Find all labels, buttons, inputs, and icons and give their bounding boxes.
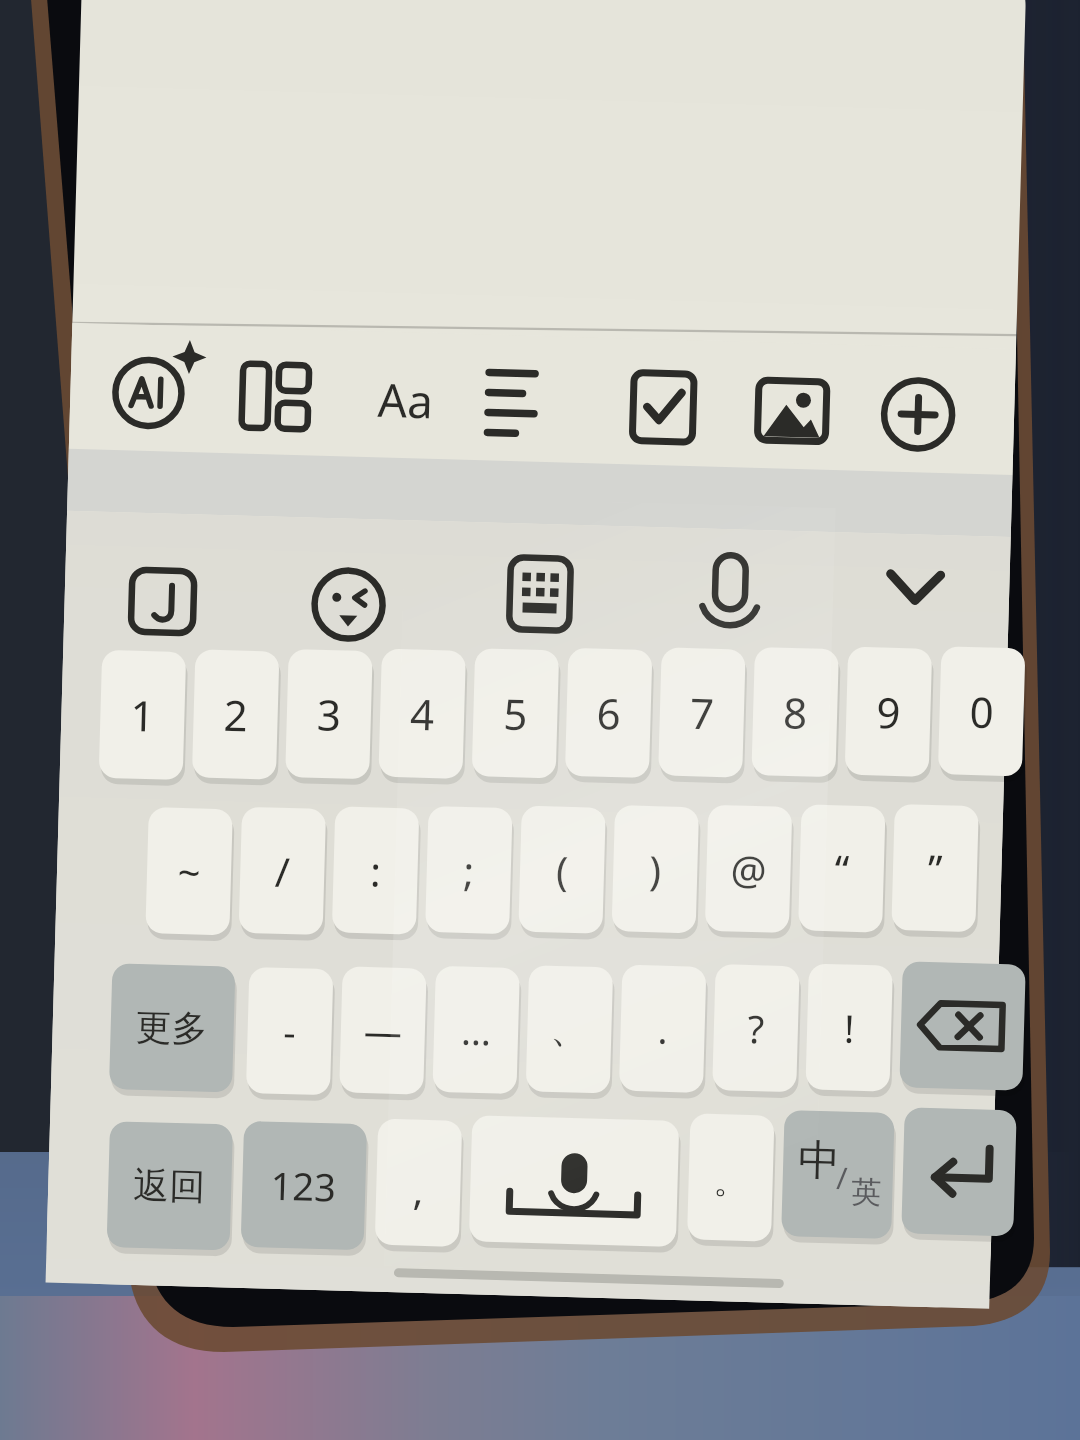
button[interactable]: @ [711, 800, 795, 926]
button[interactable]: Text format [345, 352, 449, 456]
button[interactable]: … [443, 969, 527, 1095]
button[interactable]: ! [816, 956, 900, 1082]
button[interactable]: - [257, 975, 341, 1101]
button[interactable]: 8 [753, 641, 837, 769]
button[interactable]: 4 [380, 653, 464, 781]
button[interactable]: : [338, 812, 422, 938]
button[interactable]: AI assist [88, 352, 192, 456]
button[interactable]: . [629, 963, 713, 1089]
button[interactable]: 3 [287, 656, 371, 784]
button[interactable]: Checklist [603, 352, 707, 456]
button[interactable]: Hide keyboard [862, 548, 962, 648]
button[interactable]: Add [858, 352, 962, 456]
button[interactable]: Backspace [910, 951, 1033, 1077]
button[interactable]: Voice input [677, 548, 777, 648]
button[interactable]: 、 [536, 966, 620, 1092]
button[interactable]: 返回 [122, 1133, 245, 1259]
button[interactable]: Comma [390, 1123, 474, 1249]
button[interactable]: Chinese English switch [796, 1103, 906, 1229]
button[interactable]: Period [702, 1109, 786, 1235]
button[interactable]: Input method [110, 548, 210, 648]
button[interactable]: / [245, 815, 329, 941]
button[interactable]: Alignment [474, 352, 578, 456]
button[interactable]: close quote [897, 794, 981, 920]
button[interactable]: ? [723, 959, 807, 1085]
button[interactable]: Enter [916, 1097, 1028, 1223]
button[interactable]: 1 [101, 662, 185, 790]
button[interactable]: 123 [256, 1129, 379, 1255]
button[interactable]: open quote [804, 797, 888, 923]
button[interactable]: Image [732, 352, 836, 456]
button[interactable]: 9 [846, 638, 930, 766]
button[interactable]: Keyboard layout [487, 548, 587, 648]
button[interactable]: Layout [216, 352, 320, 456]
button[interactable]: ) [618, 803, 702, 929]
button[interactable]: 6 [567, 647, 651, 775]
button[interactable]: ~ [152, 818, 236, 944]
button[interactable]: ; [431, 809, 515, 935]
button[interactable]: 0 [939, 635, 1023, 763]
button[interactable]: 7 [660, 644, 744, 772]
button[interactable]: Emoji [296, 548, 396, 648]
button[interactable]: — [350, 972, 434, 1098]
button[interactable]: ( [524, 806, 608, 932]
button[interactable]: Space, voice input [484, 1117, 691, 1243]
button[interactable]: 更多 [120, 975, 243, 1101]
button[interactable]: 5 [473, 650, 557, 778]
button[interactable]: 2 [194, 659, 278, 787]
